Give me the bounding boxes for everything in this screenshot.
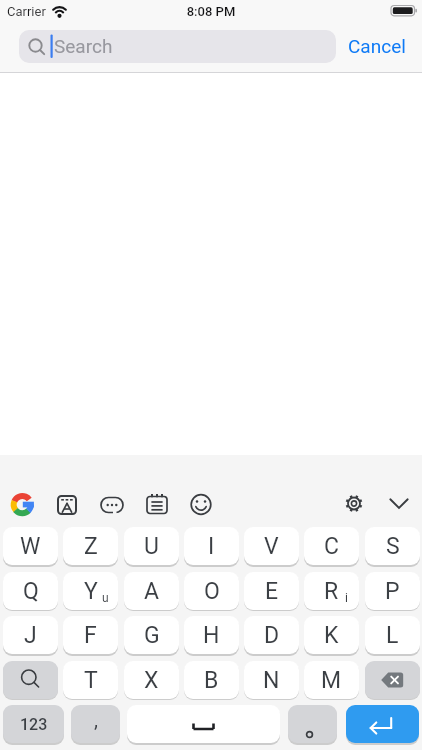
button[interactable]: V — [244, 527, 299, 565]
staticText: u — [102, 591, 109, 605]
button[interactable]: F — [63, 616, 118, 654]
button[interactable]: I — [184, 527, 239, 565]
button[interactable] — [3, 661, 58, 699]
button[interactable]: , — [71, 705, 120, 743]
button[interactable]: A — [124, 572, 179, 610]
button[interactable] — [139, 486, 175, 523]
staticText: i — [345, 591, 348, 605]
button[interactable]: Cancel — [340, 28, 414, 64]
button[interactable] — [19, 30, 336, 63]
button[interactable]: L — [365, 616, 420, 654]
staticText: 123 — [20, 715, 48, 734]
button[interactable] — [49, 486, 85, 523]
button[interactable]: X — [124, 661, 179, 699]
staticText: H — [203, 622, 220, 649]
staticText: F — [84, 622, 97, 649]
button[interactable]: H — [184, 616, 239, 654]
button[interactable]: S — [365, 527, 420, 565]
button[interactable]: C — [304, 527, 359, 565]
staticText: C — [324, 533, 339, 560]
button[interactable]: B — [184, 661, 239, 699]
staticText: V — [264, 533, 279, 560]
staticText: L — [386, 622, 399, 649]
button[interactable]: O — [184, 572, 239, 610]
button[interactable]: W — [3, 527, 58, 565]
staticText: O — [204, 578, 220, 605]
staticText: I — [208, 533, 215, 560]
button[interactable]: R — [304, 572, 359, 610]
button[interactable]: T — [63, 661, 118, 699]
staticText: W — [20, 533, 41, 560]
staticText: Cancel — [348, 35, 406, 57]
staticText: B — [204, 667, 219, 694]
staticText: N — [263, 667, 280, 694]
button[interactable]: U — [124, 527, 179, 565]
staticText: Search — [54, 35, 113, 57]
button[interactable]: E — [244, 572, 299, 610]
button[interactable]: Q — [3, 572, 58, 610]
button[interactable]: 123 — [3, 705, 64, 743]
button[interactable] — [288, 705, 337, 743]
button[interactable]: N — [244, 661, 299, 699]
button[interactable]: D — [244, 616, 299, 654]
button[interactable]: K — [304, 616, 359, 654]
staticText: U — [144, 533, 159, 560]
button[interactable]: J — [3, 616, 58, 654]
button[interactable] — [336, 486, 372, 522]
button[interactable]: Y — [63, 572, 118, 610]
button[interactable] — [381, 486, 417, 522]
staticText: Z — [84, 533, 98, 560]
staticText: X — [144, 667, 159, 694]
staticText: Q — [23, 578, 39, 605]
button[interactable]: M — [304, 661, 359, 699]
button[interactable] — [4, 486, 41, 523]
staticText: J — [24, 622, 37, 649]
staticText: , — [94, 708, 98, 731]
button[interactable] — [365, 661, 420, 699]
staticText: D — [264, 622, 280, 649]
button[interactable]: G — [124, 616, 179, 654]
staticText: A — [144, 578, 160, 605]
staticText: R — [324, 578, 339, 605]
staticText: G — [144, 622, 160, 649]
staticText: Carrier — [7, 4, 46, 19]
button[interactable] — [183, 486, 219, 523]
staticText: E — [265, 578, 279, 605]
button[interactable] — [346, 705, 419, 743]
staticText: S — [386, 533, 400, 560]
staticText: Y — [84, 578, 98, 605]
staticText: 8:08 PM — [0, 4, 422, 19]
button[interactable]: P — [365, 572, 420, 610]
staticText: P — [385, 578, 400, 605]
button[interactable] — [127, 705, 280, 743]
staticText: K — [324, 622, 339, 649]
staticText: T — [84, 667, 98, 694]
button[interactable] — [94, 486, 130, 523]
button[interactable]: Z — [63, 527, 118, 565]
staticText: M — [321, 667, 342, 694]
